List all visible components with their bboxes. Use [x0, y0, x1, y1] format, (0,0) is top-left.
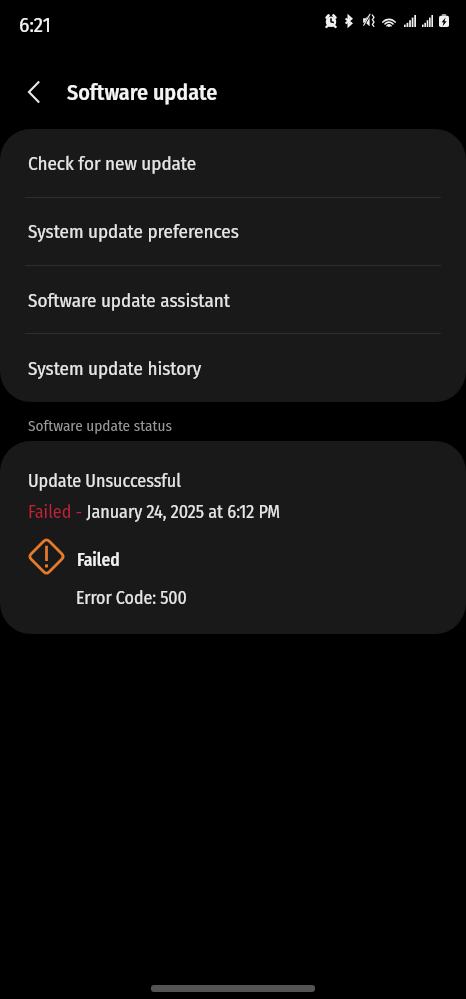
staticText: Software update assistant [28, 289, 230, 312]
staticText: Software update status [28, 417, 172, 435]
staticText: 6:21 [19, 12, 51, 37]
button[interactable]: System update history [0, 334, 466, 402]
staticText: System update preferences [28, 220, 239, 243]
staticText: Update Unsuccessful [28, 470, 182, 492]
button[interactable]: Navigate up [12, 70, 56, 114]
staticText: Check for new update [28, 152, 197, 175]
button[interactable]: Check for new update [0, 129, 466, 197]
staticText: Failed - January 24, 2025 at 6:12 PM [28, 501, 281, 523]
button[interactable]: System update preferences [0, 197, 466, 265]
staticText: Error Code: 500 [76, 587, 187, 608]
button[interactable]: Software update assistant [0, 266, 466, 334]
staticText: System update history [28, 357, 202, 380]
staticText: Software update [67, 79, 218, 105]
staticText: Failed [77, 550, 120, 571]
